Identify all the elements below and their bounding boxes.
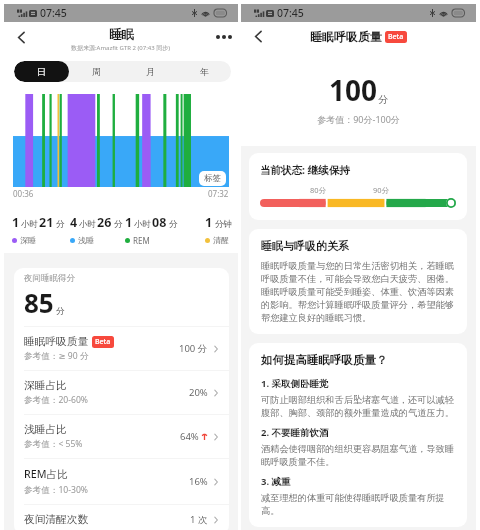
staticText: 日 [37, 66, 46, 77]
staticText: 数据来源:Amazfit GTR 2 (07:43 同步) [71, 44, 171, 52]
staticText: 1. 采取侧卧睡觉 [261, 377, 329, 390]
staticText: 07:32 [208, 188, 229, 199]
staticText: 参考值：< 55% [24, 438, 83, 450]
staticText: 分 [114, 219, 123, 230]
staticText: 睡眠与呼吸的关系 [261, 239, 349, 253]
staticText: 参考值：90分-100分 [241, 113, 476, 125]
staticText: 酒精会使得咽部的组织更容易阻塞气道，导致睡眠呼吸质量不佳。 [261, 443, 456, 467]
button[interactable]: 浅睡占比 [14, 415, 229, 458]
staticText: 21 [39, 214, 54, 231]
button[interactable]: REM占比 [14, 459, 229, 504]
button[interactable]: 标签 [199, 171, 226, 186]
staticText: 分 [378, 93, 388, 106]
staticText: 1 次 [190, 513, 208, 526]
staticText: 1 [12, 214, 20, 231]
staticText: 分钟 [215, 219, 232, 230]
staticText: 20% [189, 386, 208, 399]
button[interactable]: 日 [14, 61, 69, 82]
button[interactable]: 深睡占比 [14, 371, 229, 414]
staticText: 16% [189, 475, 208, 488]
staticText: 64% [180, 430, 199, 443]
staticText: 00:36 [13, 188, 34, 199]
staticText: 年 [200, 66, 209, 77]
staticText: 分 [56, 306, 65, 317]
button[interactable]: 夜间清醒次数 [14, 505, 229, 530]
button[interactable]: 周 [69, 61, 123, 82]
staticText: 浅睡占比 [24, 423, 67, 436]
staticText: 可防止咽部组织和舌后坠堵塞气道，还可以减轻腹部、胸部、颈部的额外重量造成的气道压… [261, 394, 456, 418]
staticText: 深睡 [20, 235, 36, 245]
staticText: 参考值：20-60% [24, 394, 88, 406]
staticText: 睡眠呼吸质量与您的日常生活密切相关，若睡眠呼吸质量不佳，可能会导致您白天疲劳、困… [261, 260, 456, 323]
staticText: 月 [146, 66, 155, 77]
staticText: 2. 不要睡前饮酒 [261, 426, 329, 439]
button[interactable]: Back [8, 24, 34, 50]
staticText: 85 [24, 285, 54, 320]
staticText: 100 分 [179, 342, 208, 355]
staticText: 07:45 [277, 6, 304, 20]
button[interactable]: 年 [177, 61, 231, 82]
staticText: 当前状态: 继续保持 [260, 163, 350, 177]
staticText: 参考值：≥ 90 分 [24, 350, 89, 362]
staticText: 07:45 [40, 6, 67, 20]
staticText: REM占比 [24, 467, 68, 482]
staticText: 小时 [134, 219, 151, 230]
staticText: Beta [388, 32, 404, 42]
button[interactable]: 月 [123, 61, 177, 82]
button[interactable]: More options [211, 24, 237, 50]
staticText: 如何提高睡眠呼吸质量？ [261, 353, 388, 367]
staticText: 参考值：10-30% [24, 484, 88, 496]
staticText: 睡眠呼吸质量 [24, 335, 89, 348]
staticText: 睡眠呼吸质量 [310, 29, 382, 44]
staticText: 90分 [373, 185, 390, 195]
staticText: 100 [329, 71, 378, 109]
staticText: 分 [169, 219, 178, 230]
staticText: 减至理想的体重可能使得睡眠呼吸质量有所提高。 [261, 492, 456, 516]
staticText: 分 [56, 219, 65, 230]
staticText: 清醒 [213, 235, 229, 245]
staticText: 4 [70, 214, 78, 231]
staticText: 08 [152, 214, 167, 231]
button[interactable]: 睡眠呼吸质量 [14, 327, 229, 370]
staticText: 小时 [79, 219, 96, 230]
staticText: 周 [92, 66, 101, 77]
staticText: 深睡占比 [24, 379, 67, 392]
staticText: 80分 [310, 185, 327, 195]
staticText: 1 [125, 214, 133, 231]
staticText: 小时 [21, 219, 38, 230]
staticText: 1 [205, 214, 213, 231]
staticText: 标签 [204, 173, 221, 184]
staticText: REM [133, 235, 150, 246]
staticText: 夜间睡眠得分 [24, 273, 75, 284]
button[interactable]: Back [245, 23, 271, 49]
staticText: 3. 减重 [261, 475, 291, 488]
staticText: 26 [97, 214, 112, 231]
staticText: Beta [95, 337, 111, 347]
staticText: 夜间清醒次数 [24, 513, 89, 526]
staticText: 睡眠 [109, 27, 134, 43]
staticText: 浅睡 [78, 235, 94, 245]
